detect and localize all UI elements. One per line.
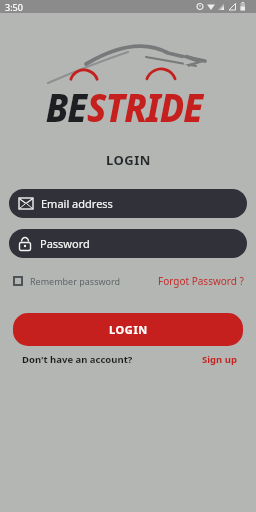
staticText: Don't have an account?	[22, 353, 133, 366]
staticText: Remember password	[30, 275, 121, 287]
staticText: BE	[46, 79, 87, 133]
staticText: Forgot Password ?	[158, 274, 244, 288]
button[interactable]: Remember password	[13, 275, 121, 287]
staticText: LOGIN	[109, 322, 148, 337]
staticText: Password	[40, 236, 90, 251]
button[interactable]: Forgot Password ?	[158, 274, 244, 288]
staticText: LOGIN	[106, 151, 151, 169]
button[interactable]: LOGIN	[13, 313, 243, 346]
staticText: STRIDE	[87, 79, 202, 133]
staticText: Sign up	[202, 353, 237, 366]
button[interactable]: Email address	[9, 189, 247, 218]
staticText: Email address	[41, 196, 113, 211]
button[interactable]: Sign up	[202, 353, 237, 366]
staticText: 3:50	[5, 1, 23, 13]
button[interactable]: Password	[9, 229, 247, 258]
